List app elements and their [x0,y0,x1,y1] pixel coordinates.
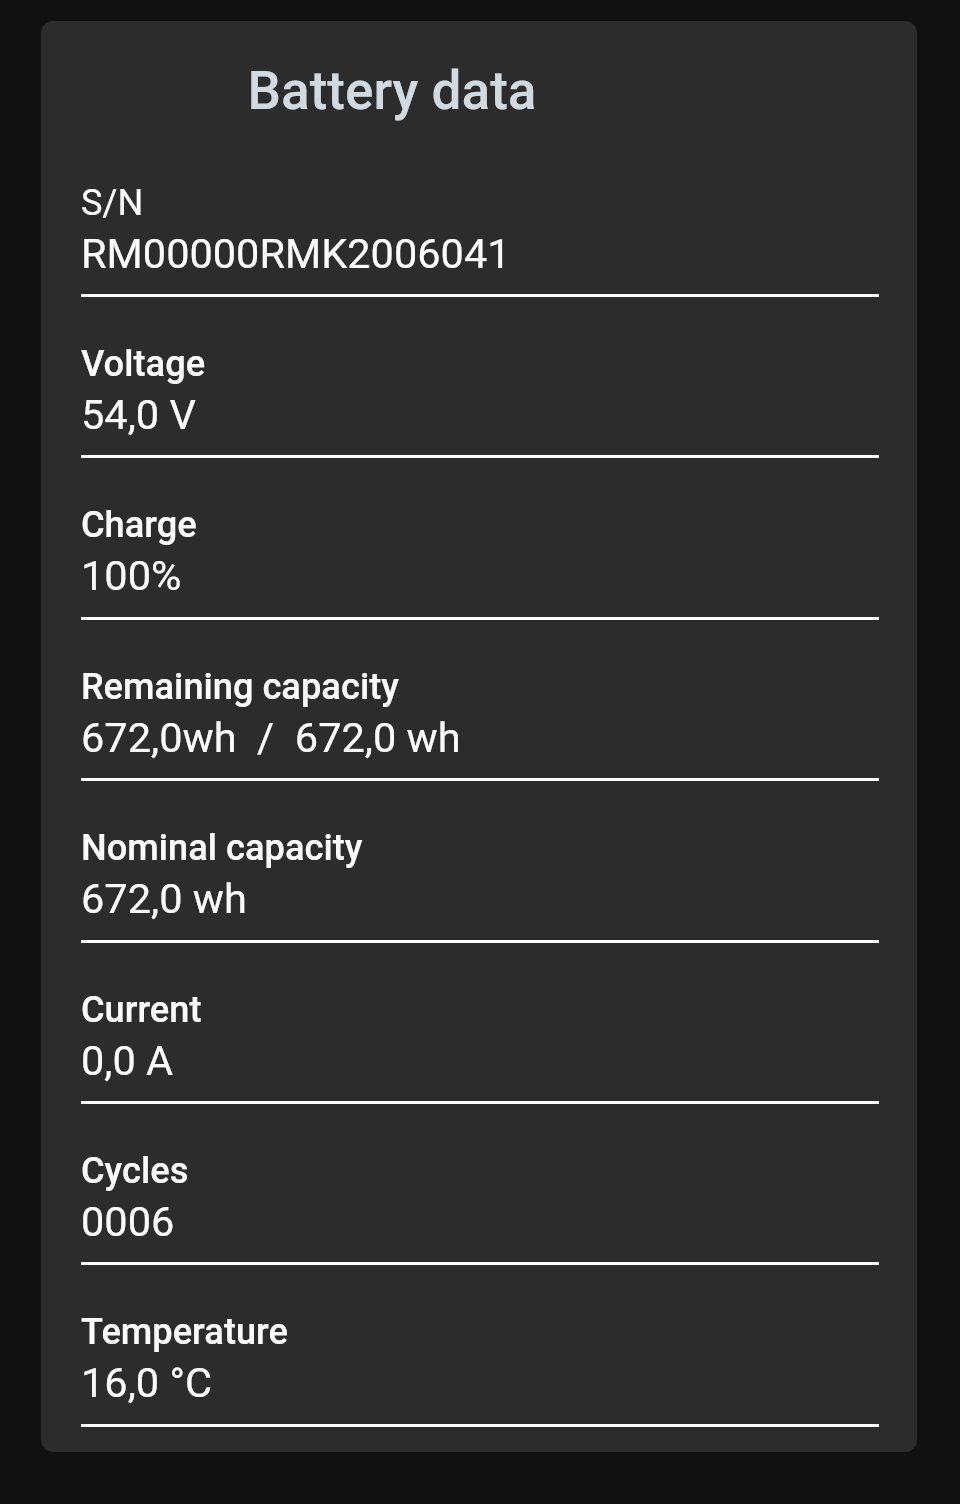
staticText: Battery data [81,60,703,122]
staticText: Nominal capacity [81,826,363,868]
button[interactable]: Current [81,943,879,1104]
button[interactable]: Cycles [81,1104,879,1265]
staticText: Current [81,988,202,1030]
staticText: RM00000RMK2006041 [81,229,511,278]
staticText: 0006 [81,1197,175,1246]
button[interactable]: S/N [81,136,879,297]
button[interactable]: Charge [81,458,879,619]
staticText: Cycles [81,1149,189,1191]
staticText: 672,0wh / 672,0 wh [81,713,461,762]
staticText: Temperature [81,1310,288,1352]
button[interactable]: Nominal capacity [81,781,879,942]
button[interactable]: Temperature [81,1265,879,1426]
button[interactable]: Remaining capacity [81,620,879,781]
button[interactable]: Voltage [81,297,879,458]
staticText: 16,0 °C [81,1358,212,1407]
staticText: S/N [81,181,144,223]
staticText: 54,0 V [81,390,196,439]
staticText: 100% [81,551,182,600]
staticText: Charge [81,503,197,545]
staticText: Voltage [81,342,206,384]
staticText: 672,0 wh [81,874,247,923]
button[interactable]: Battery data [81,60,703,130]
staticText: Remaining capacity [81,665,399,707]
staticText: 0,0 A [81,1036,174,1085]
